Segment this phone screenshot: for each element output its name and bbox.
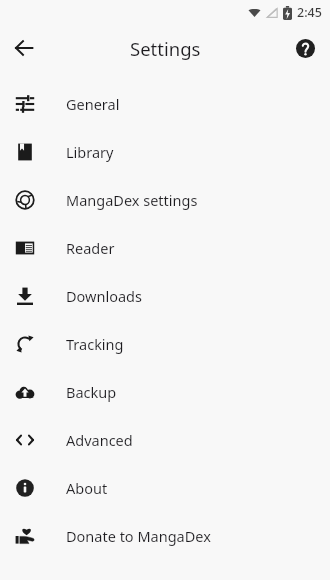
button[interactable]: Reader <box>0 224 330 272</box>
button[interactable]: Help <box>286 29 324 67</box>
staticText: Backup <box>66 382 117 402</box>
staticText: Reader <box>66 238 115 258</box>
button[interactable]: Downloads <box>0 272 330 320</box>
button[interactable]: Advanced <box>0 416 330 464</box>
staticText: Advanced <box>66 430 133 450</box>
button[interactable]: Donate to MangaDex <box>0 512 330 560</box>
staticText: General <box>66 94 120 114</box>
button[interactable]: Library <box>0 128 330 176</box>
button[interactable]: Tracking <box>0 320 330 368</box>
staticText: Library <box>66 142 114 162</box>
button[interactable]: General <box>0 80 330 128</box>
staticText: Tracking <box>66 334 124 354</box>
staticText: 2:45 <box>297 4 322 21</box>
staticText: Downloads <box>66 286 142 306</box>
staticText: About <box>66 478 108 498</box>
button[interactable]: Back <box>4 28 44 68</box>
button[interactable]: Backup <box>0 368 330 416</box>
button[interactable]: About <box>0 464 330 512</box>
staticText: Settings <box>130 36 201 61</box>
staticText: Donate to MangaDex <box>66 526 211 546</box>
staticText: MangaDex settings <box>66 190 198 210</box>
button[interactable]: MangaDex settings <box>0 176 330 224</box>
